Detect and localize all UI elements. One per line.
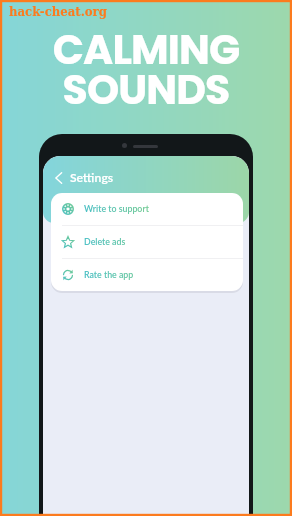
button[interactable]: Back (50, 169, 68, 187)
staticText: hack-cheat.org (9, 4, 107, 19)
button[interactable]: Rate the app (51, 259, 243, 291)
button[interactable]: Delete ads (51, 226, 243, 258)
staticText: Write to support (84, 203, 149, 214)
staticText: SOUNDS (0, 61, 292, 118)
staticText: Delete ads (84, 236, 126, 247)
staticText: Settings (70, 170, 114, 185)
staticText: CALMING (0, 21, 292, 78)
staticText: Rate the app (84, 269, 134, 280)
button[interactable]: Write to support (51, 193, 243, 225)
